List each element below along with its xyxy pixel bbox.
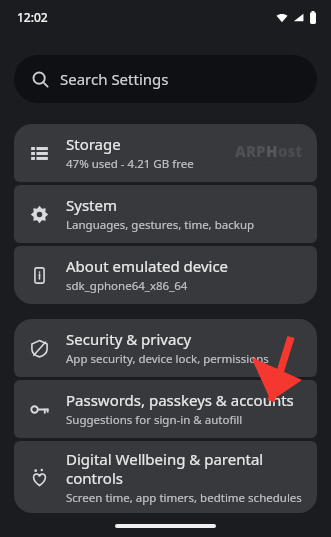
button[interactable]: Digital Wellbeing & parental controls [14, 441, 317, 513]
staticText: Storage [66, 134, 121, 154]
staticText: About emulated device [66, 256, 229, 276]
button[interactable]: Security & privacy [14, 319, 317, 377]
button[interactable]: Passwords, passkeys & accounts [14, 380, 317, 438]
staticText: 47% used - 4.21 GB free [66, 156, 194, 172]
staticText: Suggestions for sign-in & autofill [66, 412, 243, 428]
staticText: ARP [235, 141, 266, 161]
staticText: H [266, 141, 278, 161]
button[interactable]: System [14, 185, 317, 243]
staticText: Passwords, passkeys & accounts [66, 390, 294, 410]
staticText: sdk_gphone64_x86_64 [66, 278, 188, 294]
staticText: Languages, gestures, time, backup [66, 217, 255, 233]
staticText: ost [278, 141, 303, 161]
button[interactable]: Search Settings [14, 55, 317, 103]
button[interactable]: Storage [14, 124, 317, 182]
staticText: Search Settings [60, 69, 169, 89]
staticText: App security, device lock, permissions [66, 351, 269, 367]
staticText: Digital Wellbeing & parental controls [66, 449, 264, 488]
staticText: System [66, 195, 117, 215]
button[interactable]: About emulated device [14, 246, 317, 304]
staticText: Security & privacy [66, 329, 192, 349]
staticText: Screen time, app timers, bedtime schedul… [66, 490, 302, 506]
staticText: 12:02 [17, 9, 48, 25]
